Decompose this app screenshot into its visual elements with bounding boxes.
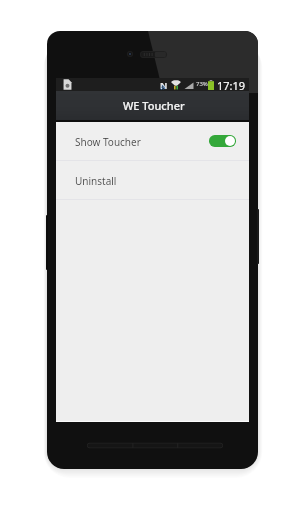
button[interactable]: Show Toucher	[56, 122, 249, 160]
button[interactable]: Uninstall	[56, 161, 249, 199]
staticText: Show Toucher	[75, 135, 141, 149]
staticText: 73%	[196, 80, 208, 88]
staticText: Uninstall	[75, 174, 117, 188]
staticText: 17:19	[217, 78, 246, 91]
staticText: WE Toucher	[123, 98, 185, 113]
staticText: N	[160, 79, 168, 91]
